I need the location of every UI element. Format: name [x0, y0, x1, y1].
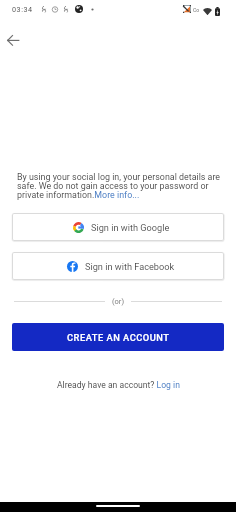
staticText: By using your social log in, your person… — [17, 172, 227, 200]
staticText: 03:34 — [12, 5, 33, 13]
staticText: CREATE AN ACCOUNT — [67, 332, 170, 343]
button[interactable]: CREATE AN ACCOUNT — [12, 323, 224, 351]
button[interactable]: Sign in with Facebook — [12, 252, 224, 280]
button[interactable]: Sign in with Google — [12, 213, 224, 241]
staticText: (or) — [112, 297, 124, 306]
staticText: Sign in with Facebook — [85, 261, 175, 272]
staticText: Co — [193, 7, 200, 13]
button[interactable]: Back — [1, 29, 25, 53]
button[interactable]: Already have an account? Log in — [57, 380, 180, 390]
staticText: Sign in with Google — [91, 222, 170, 233]
